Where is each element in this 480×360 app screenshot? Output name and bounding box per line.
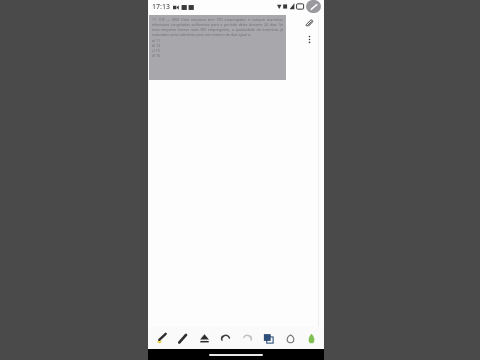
button[interactable]: Color: [302, 329, 320, 347]
staticText: 17:13: [152, 2, 170, 12]
button[interactable]: Shape: [281, 329, 299, 347]
staticText: d) 16: [152, 53, 161, 58]
staticText: 11. (UF — MG) Uma empresa tem 150 empreg…: [152, 17, 283, 37]
staticText: a) 11: [152, 38, 161, 43]
button[interactable]: Eraser: [195, 329, 213, 347]
staticText: c) 13: [152, 48, 160, 53]
button[interactable]: Pages: [259, 329, 277, 347]
button[interactable]: Highlighter: [152, 329, 170, 347]
button[interactable]: Undo: [216, 329, 234, 347]
button[interactable]: Account: [306, 0, 321, 13]
button[interactable]: Attach: [302, 16, 316, 30]
staticText: b) 12: [152, 43, 161, 48]
button[interactable]: Redo: [238, 329, 256, 347]
button[interactable]: More options: [302, 32, 316, 46]
button[interactable]: Pen: [173, 329, 191, 347]
